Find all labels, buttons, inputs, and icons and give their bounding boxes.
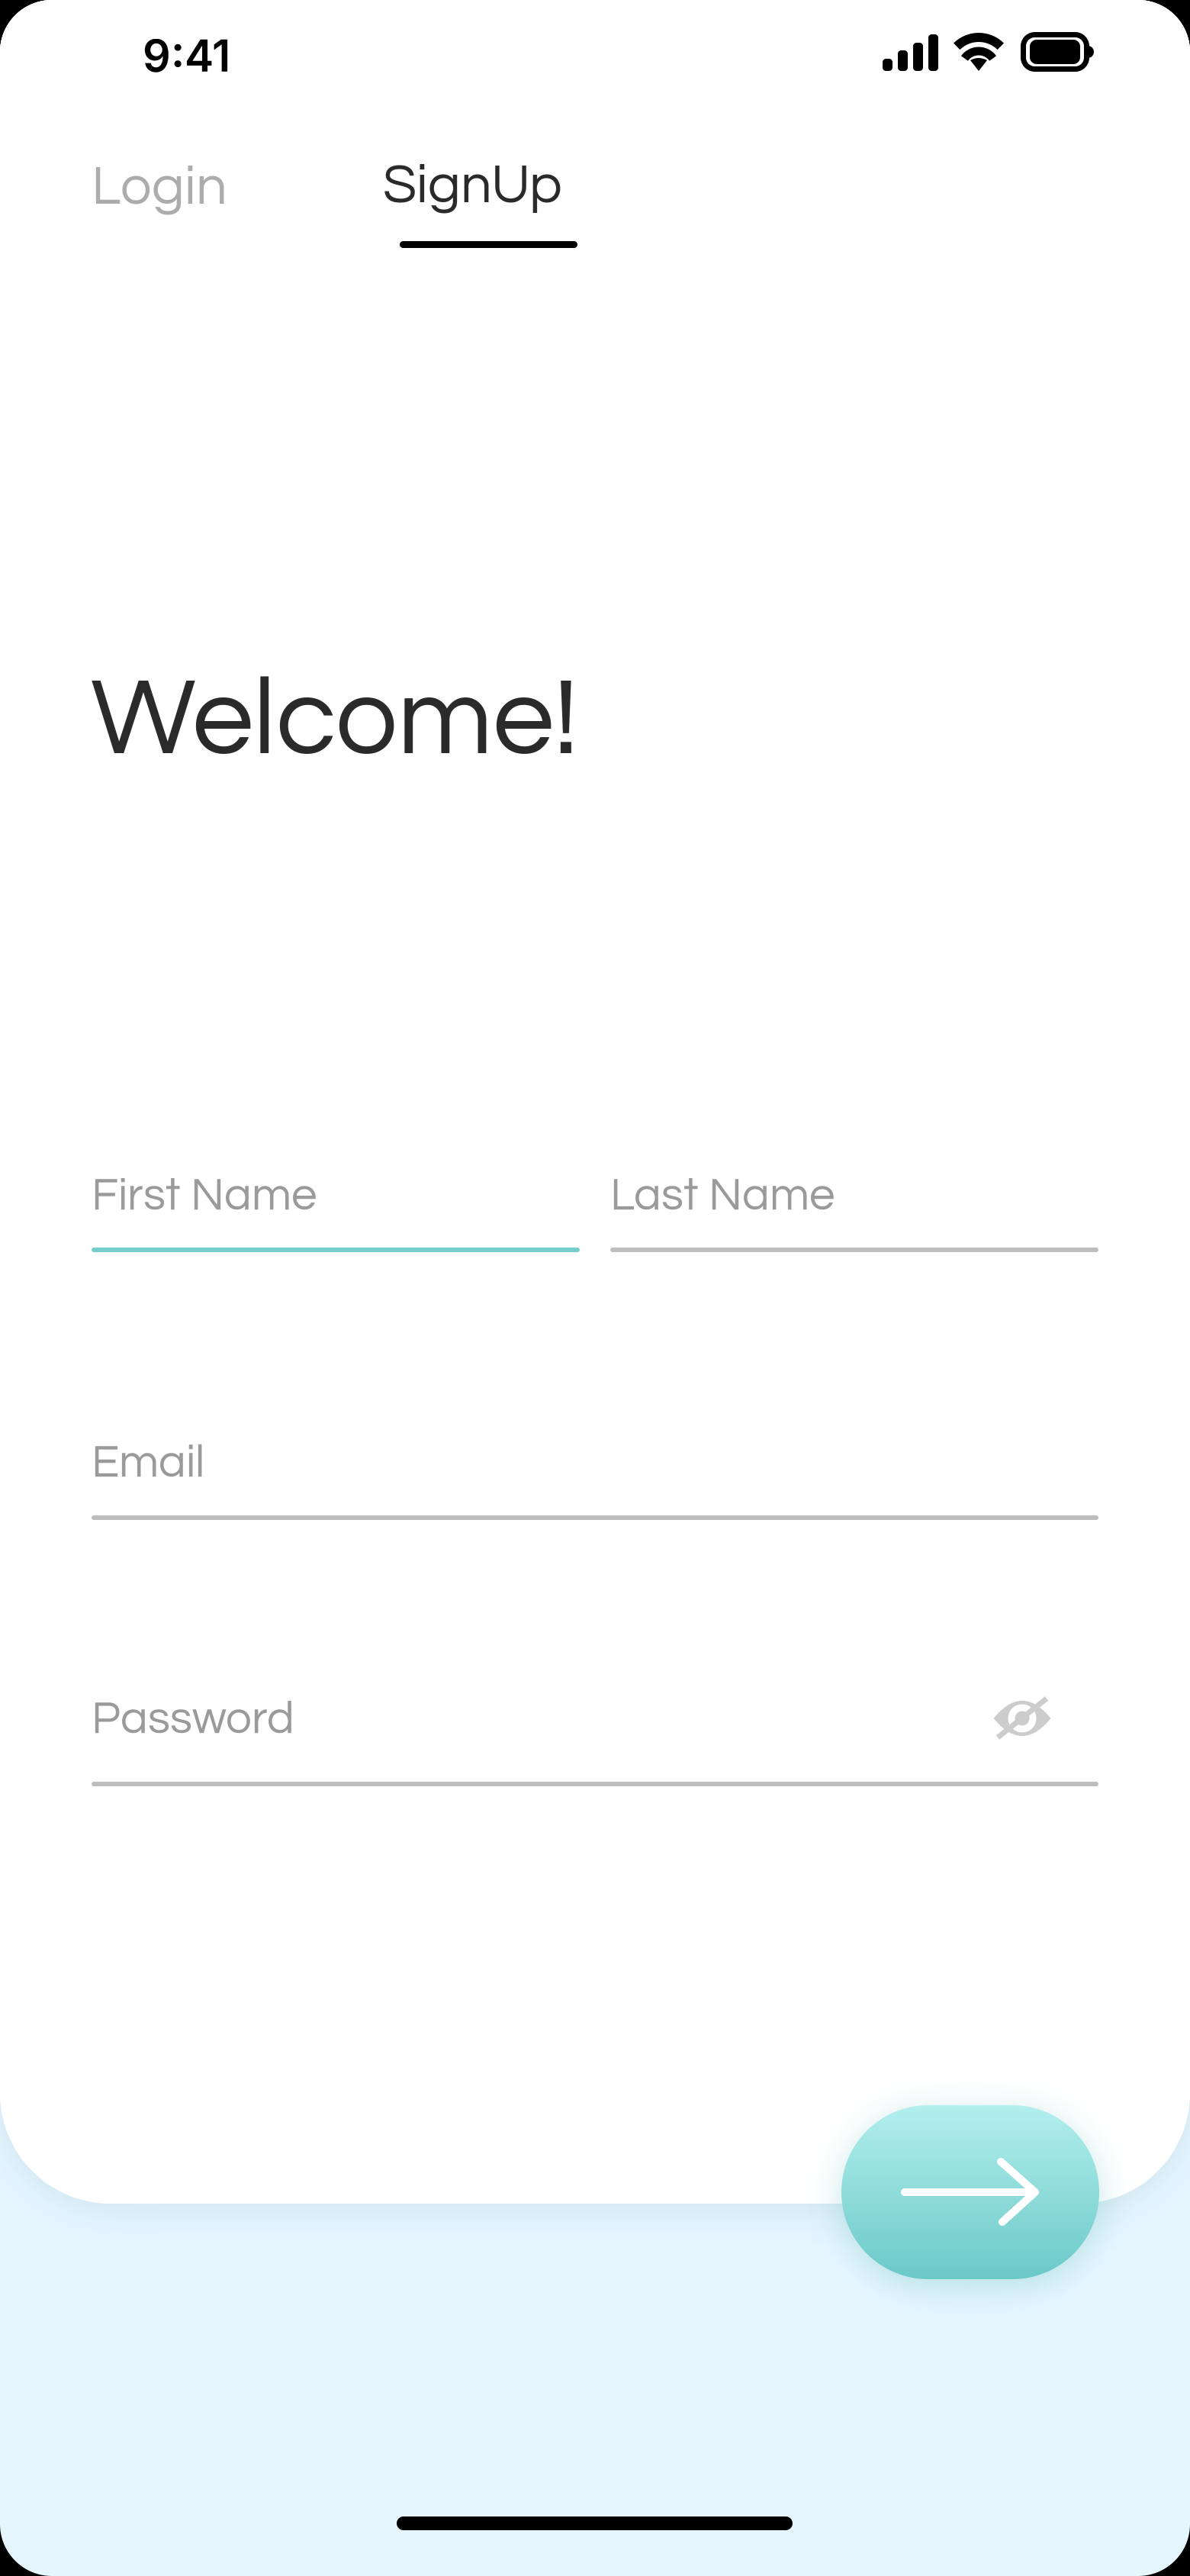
staticText: Welcome!	[91, 663, 578, 776]
staticText: Last Name	[610, 1172, 835, 1219]
staticText: 9:41	[143, 29, 230, 82]
button[interactable]: Show password	[974, 1683, 1073, 1753]
staticText: Login	[92, 159, 227, 215]
button[interactable]: Login	[92, 149, 275, 225]
staticText: Password	[92, 1695, 294, 1743]
staticText: SignUp	[383, 157, 562, 214]
button[interactable]: Continue	[841, 2105, 1099, 2279]
staticText: Email	[92, 1439, 204, 1486]
button[interactable]: SignUp	[383, 147, 581, 245]
staticText: First Name	[92, 1172, 317, 1219]
